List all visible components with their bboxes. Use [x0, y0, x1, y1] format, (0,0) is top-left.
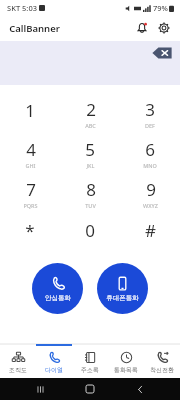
- button[interactable]: 3: [120, 93, 180, 133]
- staticText: PQRS: [23, 202, 38, 209]
- staticText: #: [145, 219, 156, 242]
- staticText: CallBanner: [9, 22, 60, 35]
- button[interactable]: 조직도: [0, 344, 36, 378]
- staticText: 통화목록: [114, 366, 138, 374]
- staticText: SKT 5:03: [7, 3, 37, 13]
- staticText: 4: [26, 138, 36, 161]
- staticText: 안심통화: [45, 294, 71, 302]
- button[interactable]: Notifications: [133, 19, 151, 37]
- button[interactable]: 9: [120, 173, 180, 213]
- button[interactable]: 2: [60, 93, 120, 133]
- staticText: 5: [85, 138, 95, 161]
- staticText: MNO: [143, 162, 157, 169]
- button[interactable]: 5: [60, 133, 120, 173]
- staticText: WXYZ: [143, 202, 158, 209]
- staticText: 2: [86, 98, 96, 121]
- staticText: 0: [85, 219, 95, 242]
- staticText: GHI: [25, 162, 36, 169]
- staticText: 3: [145, 98, 155, 121]
- staticText: 79%: [153, 3, 168, 13]
- button[interactable]: 7: [0, 173, 60, 213]
- button[interactable]: 착신전환: [144, 344, 180, 378]
- button[interactable]: *: [0, 213, 60, 253]
- button[interactable]: 4: [0, 133, 60, 173]
- button[interactable]: Back: [130, 379, 150, 399]
- staticText: 휴대폰통화: [106, 294, 139, 302]
- button[interactable]: 안심통화: [32, 263, 83, 314]
- button[interactable]: 다이얼: [36, 344, 72, 378]
- staticText: 8: [86, 178, 96, 201]
- button[interactable]: 주소록: [72, 344, 108, 378]
- staticText: TUV: [85, 202, 96, 209]
- button[interactable]: 통화목록: [108, 344, 144, 378]
- button[interactable]: 6: [120, 133, 180, 173]
- staticText: 다이얼: [45, 366, 63, 374]
- staticText: 9: [146, 178, 156, 201]
- staticText: 주소록: [81, 366, 99, 374]
- staticText: 조직도: [9, 366, 27, 374]
- button[interactable]: 1: [0, 93, 60, 133]
- button[interactable]: Settings: [155, 19, 173, 37]
- staticText: 착신전환: [150, 366, 174, 374]
- button[interactable]: 8: [60, 173, 120, 213]
- staticText: 6: [145, 138, 155, 161]
- button[interactable]: #: [120, 213, 180, 253]
- button[interactable]: Recents: [30, 379, 50, 399]
- staticText: 7: [26, 178, 36, 201]
- staticText: 1: [25, 99, 35, 122]
- button[interactable]: 0: [60, 213, 120, 253]
- staticText: DEF: [145, 122, 155, 129]
- staticText: ABC: [85, 122, 96, 129]
- staticText: *: [25, 219, 35, 242]
- button[interactable]: Home: [80, 379, 100, 399]
- button[interactable]: Backspace: [152, 46, 172, 60]
- button[interactable]: 휴대폰통화: [97, 263, 148, 314]
- staticText: JKL: [86, 162, 95, 169]
